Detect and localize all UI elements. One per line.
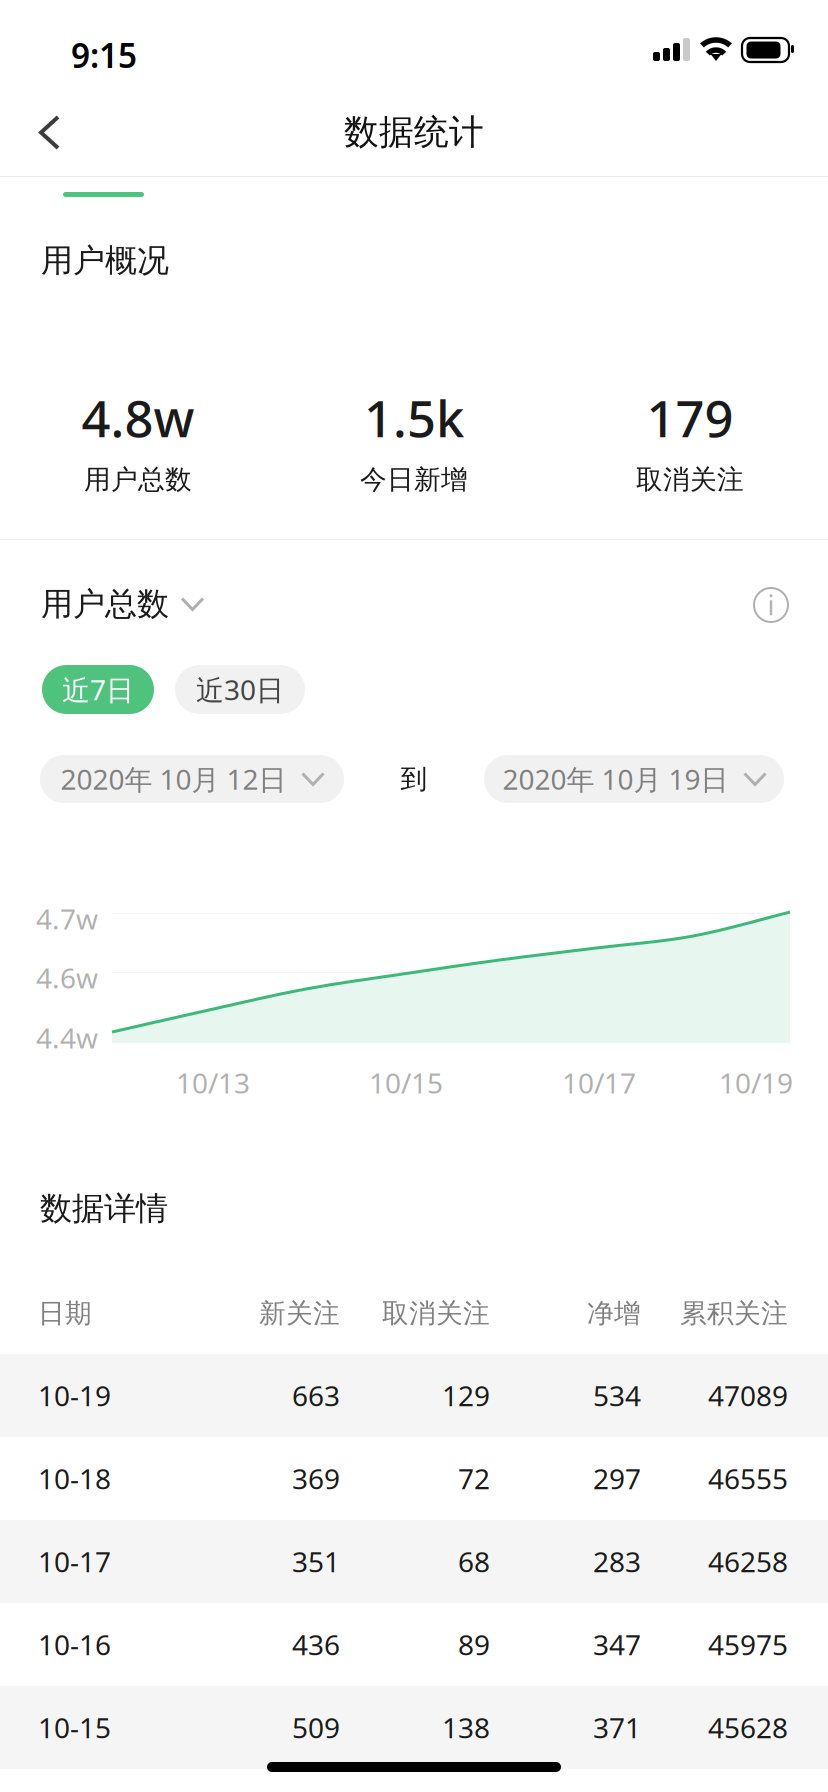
staticText: 10-19: [38, 1377, 111, 1414]
staticText: 138: [442, 1709, 490, 1746]
staticText: 到: [400, 763, 427, 795]
staticText: 10/13: [176, 1064, 250, 1101]
staticText: 近30日: [196, 671, 284, 708]
staticText: 取消关注: [636, 463, 744, 496]
staticText: 1.5k: [364, 384, 464, 451]
staticText: 用户总数: [84, 463, 192, 496]
staticText: 46555: [708, 1460, 788, 1497]
staticText: 72: [458, 1460, 490, 1497]
staticText: 89: [458, 1626, 490, 1663]
staticText: 534: [593, 1377, 641, 1414]
staticText: i: [767, 587, 774, 623]
staticText: 新关注: [259, 1297, 340, 1330]
staticText: 283: [593, 1543, 641, 1580]
staticText: 2020年 10月 19日: [502, 760, 728, 798]
staticText: 351: [292, 1543, 340, 1580]
staticText: 46258: [708, 1543, 788, 1580]
staticText: 累积关注: [680, 1297, 788, 1330]
staticText: 4.4w: [36, 1019, 98, 1056]
staticText: 10-17: [38, 1543, 111, 1580]
button[interactable]: 近7日: [42, 665, 154, 714]
staticText: 179: [646, 384, 733, 451]
staticText: 2020年 10月 12日: [60, 760, 286, 798]
staticText: 近7日: [62, 671, 134, 708]
button[interactable]: 返回: [17, 93, 82, 172]
staticText: 129: [442, 1377, 490, 1414]
staticText: 10-15: [38, 1709, 111, 1746]
staticText: 10-18: [38, 1460, 111, 1497]
staticText: 509: [292, 1709, 340, 1746]
staticText: 10/15: [369, 1064, 443, 1101]
staticText: 369: [292, 1460, 340, 1497]
button[interactable]: 用户总数: [41, 581, 203, 627]
button[interactable]: 说明: [745, 579, 797, 631]
button[interactable]: 2020年 10月 12日: [40, 755, 344, 803]
staticText: 297: [593, 1460, 641, 1497]
staticText: 净增: [587, 1297, 641, 1330]
staticText: 663: [292, 1377, 340, 1414]
staticText: 4.6w: [36, 959, 98, 996]
staticText: 数据统计: [344, 111, 484, 154]
staticText: 347: [593, 1626, 641, 1663]
staticText: 436: [292, 1626, 340, 1663]
staticText: 9:15: [71, 33, 137, 77]
staticText: 用户概况: [41, 241, 169, 280]
staticText: 68: [458, 1543, 490, 1580]
staticText: 4.8w: [81, 384, 194, 451]
button[interactable]: 2020年 10月 19日: [484, 755, 784, 803]
staticText: 今日新增: [360, 463, 468, 496]
staticText: 371: [593, 1709, 641, 1746]
staticText: 45628: [708, 1709, 788, 1746]
staticText: 10/17: [562, 1064, 636, 1101]
staticText: 日期: [38, 1297, 92, 1330]
staticText: 数据详情: [40, 1189, 168, 1228]
staticText: 47089: [708, 1377, 788, 1414]
staticText: 10/19: [719, 1064, 793, 1101]
staticText: 取消关注: [382, 1297, 490, 1330]
staticText: 用户总数: [41, 584, 169, 624]
staticText: 4.7w: [36, 900, 98, 937]
staticText: 45975: [708, 1626, 788, 1663]
staticText: 10-16: [38, 1626, 111, 1663]
button[interactable]: 近30日: [175, 665, 305, 714]
